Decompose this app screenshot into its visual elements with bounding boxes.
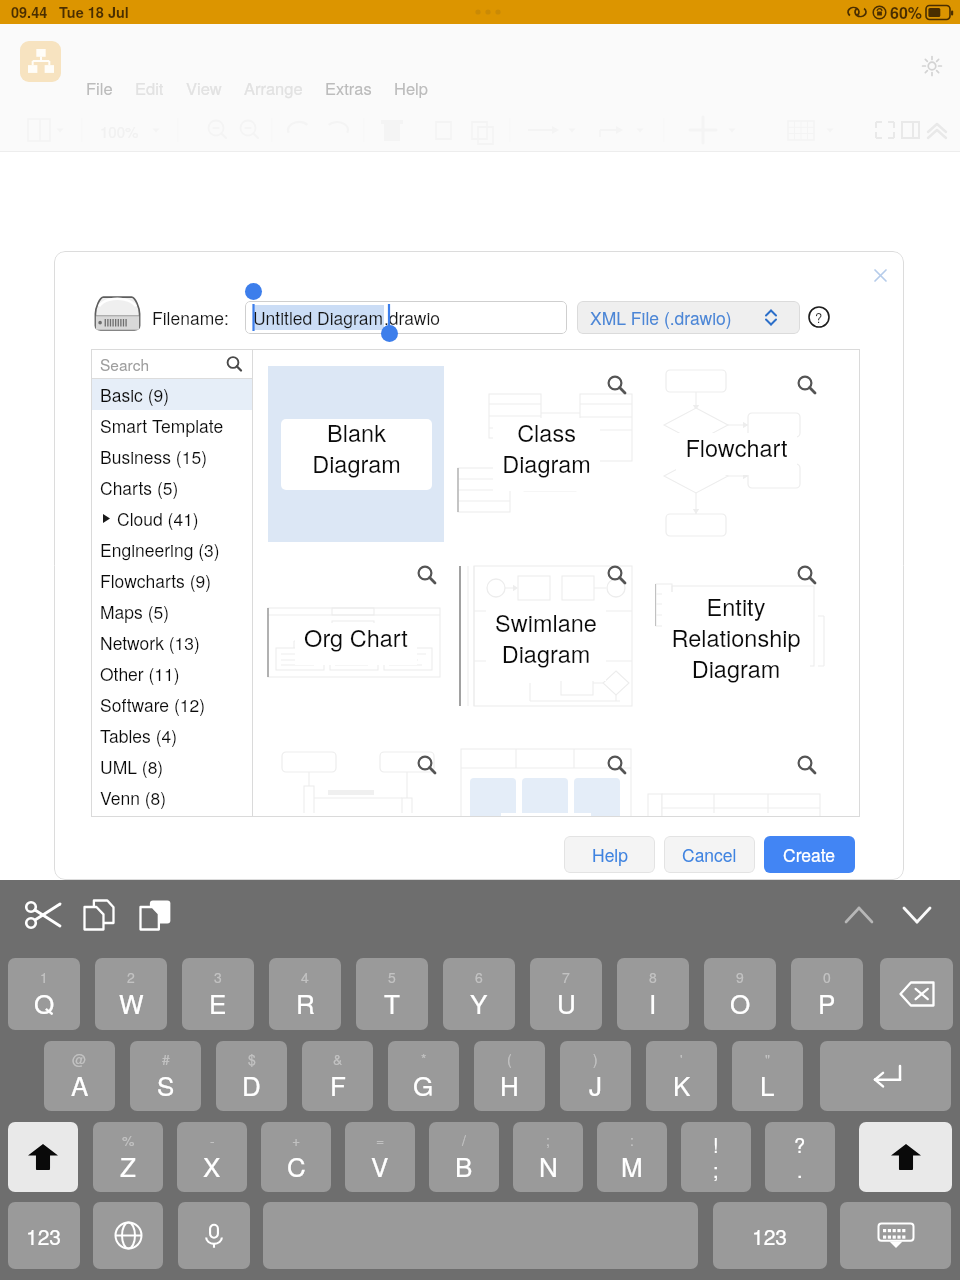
button[interactable]: Basic (9) xyxy=(91,379,252,410)
button[interactable]: ; xyxy=(513,1122,583,1192)
button[interactable]: 5 xyxy=(356,958,428,1030)
staticText: Untitled Diagram xyxy=(253,305,384,330)
button[interactable]: Copy xyxy=(76,892,122,938)
button[interactable]: / xyxy=(429,1122,499,1192)
button[interactable]: Charts (5) xyxy=(91,472,252,503)
button[interactable]: Network (13) xyxy=(91,627,252,658)
button[interactable]: 8 xyxy=(617,958,689,1030)
button[interactable]: Swimlane Diagram xyxy=(458,556,634,732)
button[interactable]: UML (8) xyxy=(91,751,252,782)
button[interactable]: Untitled Diagram xyxy=(245,301,567,334)
button[interactable]: Cut xyxy=(20,892,66,938)
button[interactable]: ' xyxy=(646,1041,717,1111)
button[interactable]: Search xyxy=(91,349,252,378)
button[interactable]: 7 xyxy=(530,958,602,1030)
button[interactable]: 0 xyxy=(791,958,863,1030)
staticText: ; xyxy=(713,1155,719,1184)
button[interactable]: Simple xyxy=(458,746,634,817)
button[interactable]: Next field xyxy=(894,892,940,938)
button[interactable]: Cloud (41) xyxy=(91,503,252,534)
button[interactable]: Entity Relationship Diagram xyxy=(648,556,824,732)
button[interactable]: Venn (8) xyxy=(91,782,252,813)
button[interactable]: Extras xyxy=(325,76,372,100)
button[interactable]: = xyxy=(345,1122,415,1192)
button[interactable]: enter xyxy=(820,1041,951,1111)
button[interactable]: @ xyxy=(44,1041,115,1111)
button[interactable]: bksp xyxy=(880,958,953,1030)
staticText: File xyxy=(86,76,113,100)
button[interactable]: Edit xyxy=(135,76,164,100)
staticText: Q xyxy=(34,984,55,1021)
button[interactable]: globe xyxy=(93,1202,163,1269)
button[interactable]: $ xyxy=(216,1041,287,1111)
button[interactable]: Arrange xyxy=(244,76,303,100)
button[interactable]: Maps (5) xyxy=(91,596,252,627)
staticText: Cancel xyxy=(682,842,737,867)
staticText: XML File (.drawio) xyxy=(590,305,732,330)
button[interactable]: Tables (4) xyxy=(91,720,252,751)
button[interactable]: Flowcharts (9) xyxy=(91,565,252,596)
button[interactable]: Paste xyxy=(132,892,178,938)
button[interactable]: Help xyxy=(806,304,832,330)
button[interactable]: + xyxy=(261,1122,331,1192)
staticText: 123 xyxy=(26,1221,62,1251)
button[interactable]: 6 xyxy=(443,958,515,1030)
button[interactable]: shift xyxy=(8,1122,78,1192)
button[interactable]: kbd xyxy=(840,1202,951,1269)
button[interactable]: * xyxy=(388,1041,459,1111)
button[interactable]: Engineering (3) xyxy=(91,534,252,565)
staticText: 7 xyxy=(562,967,570,987)
staticText: & xyxy=(333,1049,343,1069)
button[interactable]: XML File (.drawio) xyxy=(577,301,800,334)
button[interactable]: Other (11) xyxy=(91,658,252,689)
button[interactable]: # xyxy=(130,1041,201,1111)
button[interactable]: Blank Diagram xyxy=(268,366,444,542)
button[interactable]: Org Chart xyxy=(268,556,444,732)
button[interactable]: % xyxy=(93,1122,163,1192)
staticText: T xyxy=(384,984,400,1021)
button[interactable]: ( xyxy=(474,1041,545,1111)
button[interactable]: View xyxy=(186,76,222,100)
button[interactable]: Software (12) xyxy=(91,689,252,720)
button[interactable]: Help xyxy=(394,76,428,100)
button[interactable]: ) xyxy=(560,1041,631,1111)
button[interactable]: Smart Template xyxy=(91,410,252,441)
staticText: Entity Relationship Diagram xyxy=(671,589,801,685)
button[interactable]: Flowchart xyxy=(648,366,824,542)
button[interactable]: File xyxy=(86,76,113,100)
button[interactable]: Close xyxy=(860,255,900,295)
button[interactable]: Create xyxy=(764,836,855,873)
button[interactable]: 2 xyxy=(95,958,167,1030)
button[interactable]: Theme xyxy=(918,52,946,80)
button[interactable]: Class Diagram xyxy=(458,366,634,542)
button[interactable]: shift xyxy=(859,1122,952,1192)
staticText: Swimlane Diagram xyxy=(495,605,597,670)
button[interactable]: Help xyxy=(564,836,655,873)
button[interactable]: mic xyxy=(178,1202,250,1269)
button[interactable]: Sequence xyxy=(268,746,444,817)
staticText: W xyxy=(119,984,144,1021)
button[interactable]: 4 xyxy=(269,958,341,1030)
button[interactable]: & xyxy=(302,1041,373,1111)
button[interactable]: 1 xyxy=(8,958,80,1030)
button[interactable]: Cross- xyxy=(648,746,824,817)
staticText: ; xyxy=(546,1130,550,1150)
button[interactable]: : xyxy=(597,1122,667,1192)
button[interactable]: ? xyxy=(765,1122,835,1192)
button[interactable]: 9 xyxy=(704,958,776,1030)
button[interactable]: 3 xyxy=(182,958,254,1030)
staticText: 09.44 xyxy=(11,2,48,23)
staticText: : xyxy=(630,1130,634,1150)
button[interactable]: 123 xyxy=(8,1202,80,1269)
staticText: E xyxy=(209,984,227,1021)
button[interactable]: Business (15) xyxy=(91,441,252,472)
staticText: View xyxy=(186,76,222,100)
button[interactable]: Cancel xyxy=(664,836,755,873)
button[interactable]: Previous field xyxy=(836,892,882,938)
button[interactable]: 123 xyxy=(713,1202,827,1269)
button[interactable]: - xyxy=(177,1122,247,1192)
button[interactable]: draw.io xyxy=(20,41,61,82)
button[interactable]: ! xyxy=(681,1122,751,1192)
button[interactable]: " xyxy=(732,1041,803,1111)
